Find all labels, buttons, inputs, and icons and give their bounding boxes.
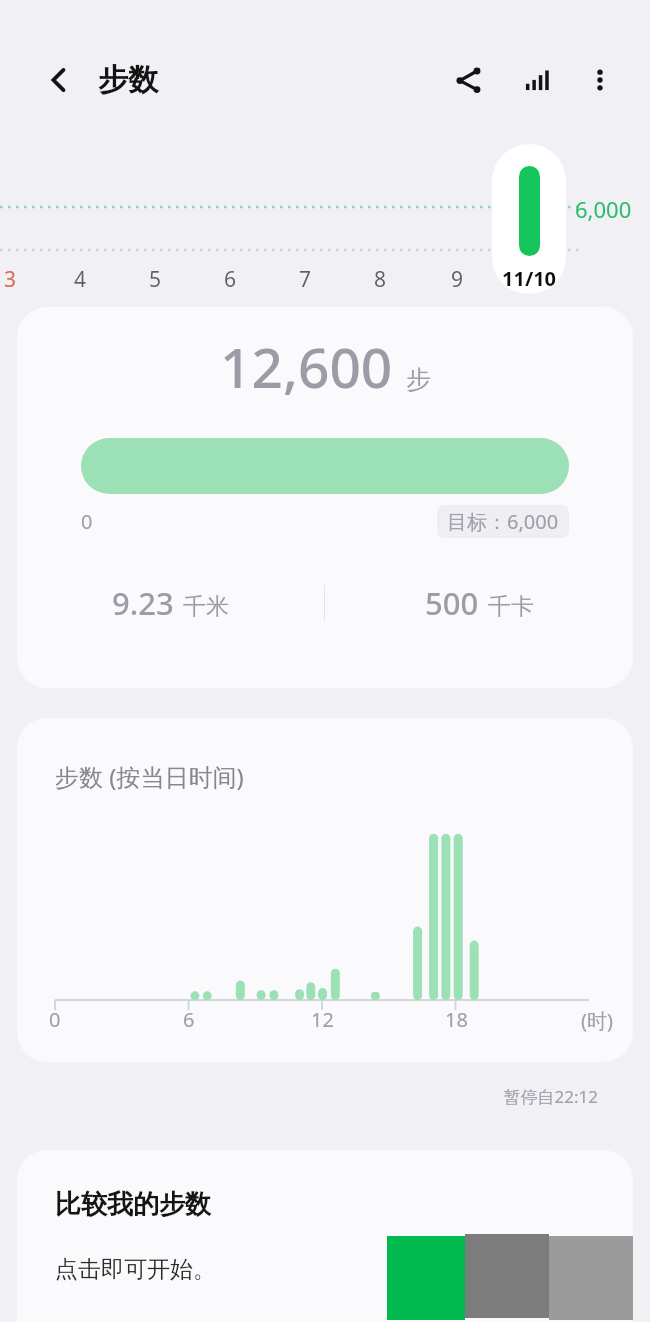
staticText: 500 <box>425 582 479 624</box>
staticText: 7 <box>299 265 312 294</box>
staticText: 11/10 <box>502 265 557 292</box>
staticText: 9 <box>451 265 464 294</box>
staticText: 18 <box>445 1006 468 1033</box>
staticText: 6,000 <box>575 194 632 224</box>
staticText: 步数 (按当日时间) <box>55 760 244 793</box>
staticText: 千卡 <box>488 592 534 621</box>
button[interactable]: Chart view <box>510 54 562 106</box>
staticText: 暂停自22:12 <box>0 1085 598 1108</box>
staticText: 步 <box>406 364 431 395</box>
staticText: 千米 <box>183 592 229 621</box>
button[interactable]: 3 <box>0 262 22 296</box>
staticText: 0 <box>49 1006 61 1033</box>
staticText: (时) <box>581 1007 613 1034</box>
button[interactable]: 500 <box>325 582 633 624</box>
staticText: 比较我的步数 <box>55 1188 211 1221</box>
staticText: 5 <box>149 265 162 294</box>
button[interactable]: 8 <box>368 262 392 296</box>
button[interactable]: 12,600 <box>17 307 633 688</box>
button[interactable]: More options <box>574 54 626 106</box>
staticText: 8 <box>374 265 387 294</box>
staticText: 步数 <box>98 61 158 99</box>
staticText: 4 <box>74 265 87 294</box>
staticText: 目标：6,000 <box>447 508 559 535</box>
button[interactable]: 4 <box>68 262 92 296</box>
button[interactable]: 9 <box>445 262 469 296</box>
button[interactable]: 9.23 <box>17 582 324 624</box>
button[interactable]: Share <box>442 54 494 106</box>
button[interactable]: 5 <box>143 262 167 296</box>
staticText: 点击即可开始。 <box>55 1255 216 1284</box>
button[interactable]: Back <box>36 57 82 103</box>
staticText: 6 <box>224 265 237 294</box>
button[interactable]: 6 <box>218 262 242 296</box>
button[interactable]: 11/10 <box>492 144 566 294</box>
staticText: 12 <box>311 1006 334 1033</box>
button[interactable]: 比较我的步数 <box>17 1150 633 1322</box>
staticText: 12,600 <box>220 329 393 404</box>
button[interactable]: 7 <box>293 262 317 296</box>
button[interactable]: 步数 (按当日时间) <box>17 718 633 1062</box>
staticText: 6 <box>183 1006 195 1033</box>
staticText: 9.23 <box>112 582 174 624</box>
staticText: 3 <box>4 265 17 294</box>
staticText: 0 <box>81 508 93 535</box>
